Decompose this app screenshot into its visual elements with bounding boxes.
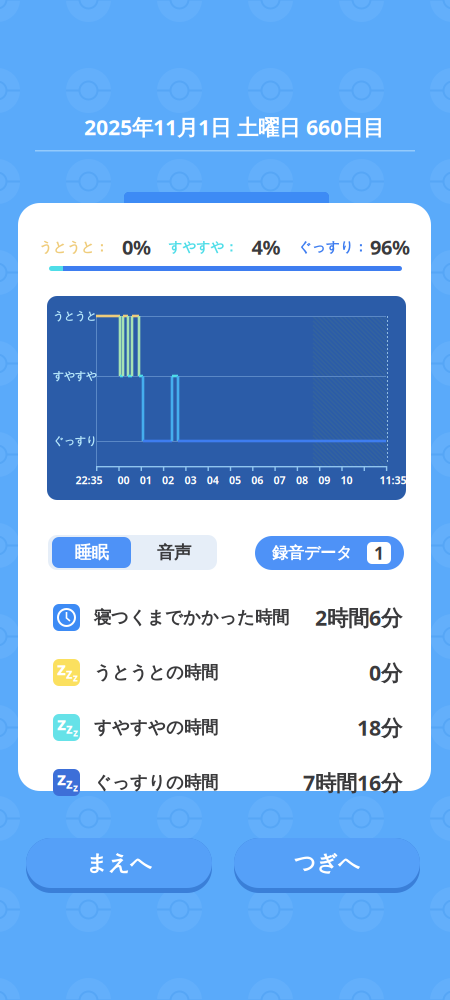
staticText: 2025年11月1日 土曜日 660日目 (84, 113, 384, 141)
button[interactable]: 睡眠 (52, 537, 131, 568)
staticText: 03 (184, 473, 196, 487)
staticText: Z (66, 667, 73, 682)
staticText: 2時間6分 (315, 603, 402, 632)
button[interactable]: 音声 (133, 537, 215, 568)
staticText: ぐっすりの時間 (94, 772, 218, 793)
button[interactable]: Z (18, 755, 431, 810)
staticText: 05 (229, 473, 241, 487)
staticText: 06 (251, 473, 263, 487)
staticText: すやすや (53, 369, 97, 382)
staticText: まえへ (86, 850, 152, 876)
staticText: すやすやの時間 (94, 717, 218, 738)
button[interactable]: つぎへ (234, 838, 420, 893)
staticText: ぐっすり： (298, 239, 367, 255)
staticText: 寝つくまでかかった時間 (94, 607, 289, 628)
staticText: 0分 (369, 658, 402, 687)
staticText: 08 (296, 473, 308, 487)
staticText: 09 (318, 473, 330, 487)
staticText: 04 (207, 473, 219, 487)
staticText: 音声 (157, 542, 191, 563)
staticText: 18分 (357, 713, 402, 742)
staticText: 07 (274, 473, 286, 487)
staticText: 1 (374, 541, 384, 564)
staticText: 4% (251, 234, 280, 260)
staticText: 10 (340, 473, 352, 487)
staticText: 22:35 (75, 473, 102, 487)
staticText: 02 (162, 473, 174, 487)
staticText: Z (73, 673, 78, 684)
staticText: ぐっすり (53, 434, 97, 447)
staticText: Z (57, 660, 66, 679)
staticText: 11:35 (379, 473, 406, 487)
staticText: 7時間16分 (303, 768, 402, 797)
staticText: Z (57, 770, 66, 789)
staticText: Z (66, 722, 73, 737)
staticText: すやすや： (168, 239, 237, 255)
button[interactable]: Z (18, 645, 431, 700)
staticText: 01 (140, 473, 152, 487)
staticText: うとうと (53, 309, 97, 322)
staticText: Z (73, 783, 78, 794)
staticText: うとうとの時間 (94, 662, 218, 683)
staticText: 録音データ (272, 543, 352, 563)
staticText: つぎへ (294, 850, 360, 876)
staticText: うとうと： (39, 239, 108, 255)
button[interactable]: Z (18, 700, 431, 755)
button[interactable]: まえへ (26, 838, 212, 893)
button[interactable]: 寝つくまでかかった時間 (18, 590, 431, 645)
staticText: 0% (122, 234, 151, 260)
staticText: Z (73, 728, 78, 739)
staticText: Z (66, 777, 73, 792)
staticText: Z (57, 715, 66, 734)
button[interactable]: 録音データ (255, 536, 404, 570)
staticText: 96% (370, 234, 410, 260)
staticText: 00 (117, 473, 129, 487)
staticText: 睡眠 (74, 542, 108, 563)
